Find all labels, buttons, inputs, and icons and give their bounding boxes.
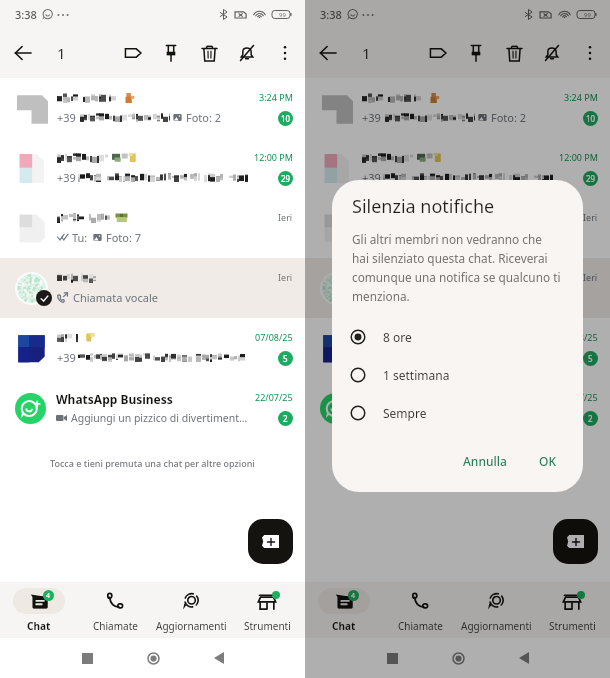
staticText: 5 xyxy=(588,353,593,364)
staticText: 29 xyxy=(586,173,596,184)
button[interactable]: Recents xyxy=(54,643,120,673)
button[interactable]: Chiamata vocale xyxy=(305,258,610,318)
button[interactable]: Back xyxy=(6,36,40,70)
staticText: +39 xyxy=(362,110,381,124)
staticText: Ieri xyxy=(583,271,598,283)
button[interactable]: Label xyxy=(114,34,152,72)
button[interactable]: Tu: xyxy=(305,198,610,258)
staticText: 1 xyxy=(57,43,66,63)
staticText: Chiamate xyxy=(398,619,443,633)
staticText: Aggiornamenti xyxy=(461,619,532,633)
button[interactable]: More options xyxy=(571,34,609,72)
staticText: 8 ore xyxy=(383,329,412,345)
staticText: Foto: 7 xyxy=(411,230,447,244)
staticText: Aggiungi un pizzico di divertimento... xyxy=(71,411,248,425)
button[interactable]: Back xyxy=(311,36,345,70)
staticText: OK xyxy=(539,453,556,469)
button[interactable]: Home xyxy=(425,643,491,673)
staticText: WhatsApp Business xyxy=(56,391,173,407)
button[interactable]: Chiamata vocale xyxy=(0,258,305,318)
button[interactable]: Aggiornamenti xyxy=(458,588,534,633)
staticText: +39 xyxy=(362,170,381,184)
staticText: Gli altri membri non vedranno che hai si… xyxy=(352,231,561,305)
staticText: 4 xyxy=(351,591,356,601)
button[interactable]: +39 xyxy=(305,78,610,138)
button[interactable]: +39 xyxy=(0,138,305,198)
staticText: 99 xyxy=(279,11,286,19)
staticText: 10 xyxy=(281,113,291,124)
button[interactable]: WhatsApp Business xyxy=(0,378,305,438)
staticText: Sempre xyxy=(383,405,427,421)
staticText: 1 settimana xyxy=(383,367,450,383)
staticText: 07/08/25 xyxy=(560,331,598,343)
button[interactable]: Back xyxy=(491,643,557,673)
staticText: Aggiungi un pizzico di divertimento... xyxy=(376,411,553,425)
button[interactable]: Sempre xyxy=(350,394,565,432)
button[interactable]: New chat xyxy=(248,519,293,564)
button[interactable]: Annulla xyxy=(455,444,515,478)
staticText: Aggiornamenti xyxy=(156,619,227,633)
staticText: Strumenti xyxy=(244,619,291,633)
staticText: Foto: 2 xyxy=(186,110,222,124)
button[interactable]: Recents xyxy=(359,643,425,673)
staticText: Strumenti xyxy=(549,619,596,633)
staticText: 10 xyxy=(586,113,596,124)
button[interactable]: New chat xyxy=(553,519,598,564)
staticText: +39 xyxy=(57,110,76,124)
button[interactable]: Mute xyxy=(533,34,571,72)
staticText: Tu: xyxy=(72,230,91,244)
staticText: +39 xyxy=(57,170,76,184)
button[interactable]: Delete xyxy=(190,34,228,72)
staticText: Chiamate xyxy=(93,619,138,633)
staticText: 4 xyxy=(46,591,51,601)
staticText: Foto: 2 xyxy=(491,110,527,124)
button[interactable]: Delete xyxy=(495,34,533,72)
button[interactable]: +39 xyxy=(305,318,610,378)
button[interactable]: +39 xyxy=(0,318,305,378)
staticText: 2 xyxy=(283,413,288,424)
staticText: 2 xyxy=(588,413,593,424)
button[interactable]: Mute xyxy=(228,34,266,72)
staticText: 99 xyxy=(584,11,591,19)
button[interactable]: +39 xyxy=(0,78,305,138)
staticText: 12:00 PM xyxy=(254,151,293,163)
button[interactable]: More options xyxy=(266,34,304,72)
staticText: Ieri xyxy=(278,271,293,283)
staticText: Chat xyxy=(332,619,356,633)
button[interactable]: +39 xyxy=(305,138,610,198)
button[interactable]: Label xyxy=(419,34,457,72)
staticText: 3:24 PM xyxy=(259,91,293,103)
button[interactable]: Tu: xyxy=(0,198,305,258)
button[interactable]: OK xyxy=(531,444,564,478)
staticText: Tocca e tieni premuta una chat per altre… xyxy=(50,457,255,469)
staticText: Tocca e tieni premuta una chat per altre… xyxy=(355,457,560,469)
staticText: Annulla xyxy=(463,453,507,469)
staticText: 29 xyxy=(281,173,291,184)
staticText: 3:38 xyxy=(320,7,342,22)
button[interactable]: 4 xyxy=(305,588,382,633)
button[interactable]: Strumenti xyxy=(229,588,305,633)
button[interactable]: Chiamate xyxy=(382,588,458,633)
staticText: 22/07/25 xyxy=(560,391,598,403)
staticText: 22/07/25 xyxy=(255,391,293,403)
button[interactable]: Back xyxy=(186,643,252,673)
staticText: Ieri xyxy=(278,211,293,223)
button[interactable]: Aggiornamenti xyxy=(153,588,229,633)
staticText: Tu: xyxy=(377,230,396,244)
button[interactable]: Pin xyxy=(457,34,495,72)
button[interactable]: WhatsApp Business xyxy=(305,378,610,438)
button[interactable]: 8 ore xyxy=(350,318,565,356)
button[interactable]: 4 xyxy=(0,588,77,633)
staticText: 3:24 PM xyxy=(564,91,598,103)
staticText: 5 xyxy=(283,353,288,364)
button[interactable]: Strumenti xyxy=(534,588,610,633)
staticText: 12:00 PM xyxy=(559,151,598,163)
button[interactable]: Pin xyxy=(152,34,190,72)
staticText: Chiamata vocale xyxy=(73,290,158,304)
staticText: Chat xyxy=(27,619,51,633)
staticText: Ieri xyxy=(583,211,598,223)
staticText: 1 xyxy=(362,43,371,63)
button[interactable]: 1 settimana xyxy=(350,356,565,394)
button[interactable]: Home xyxy=(120,643,186,673)
button[interactable]: Chiamate xyxy=(77,588,153,633)
